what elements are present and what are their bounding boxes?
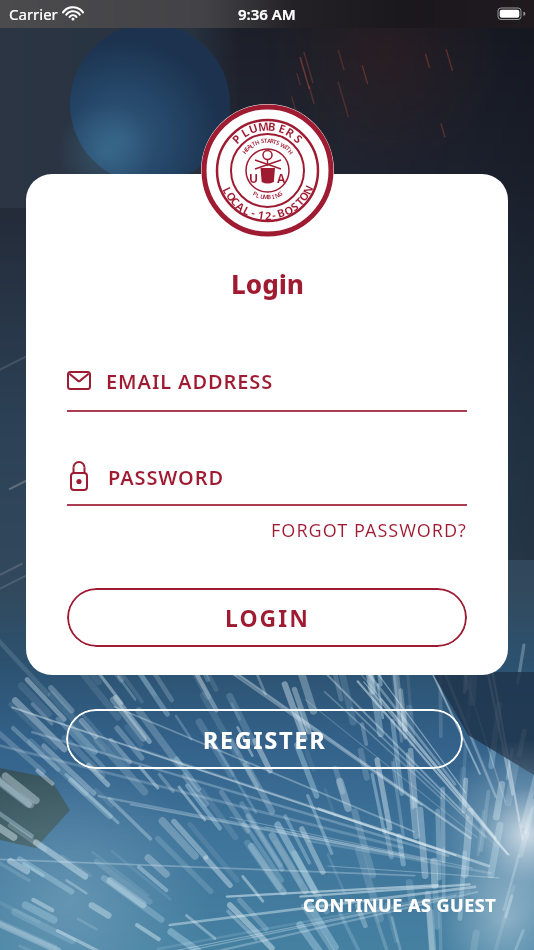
staticText: O — [281, 201, 296, 219]
staticText: N — [274, 191, 281, 200]
staticText: L — [219, 184, 236, 197]
staticText: O — [295, 188, 312, 204]
staticText: T — [284, 145, 292, 153]
staticText: W — [278, 141, 288, 151]
staticText: M — [257, 118, 270, 135]
button[interactable]: FORGOT PASSWORD? — [271, 518, 467, 543]
staticText: 2 — [265, 208, 272, 223]
staticText: B — [267, 193, 271, 201]
staticText: I — [271, 193, 276, 201]
staticText: L — [255, 192, 261, 200]
staticText: U — [259, 193, 266, 202]
staticText: I — [283, 143, 290, 151]
staticText: A — [233, 198, 248, 215]
staticText: P — [229, 130, 245, 148]
staticText: LOGIN — [225, 602, 310, 633]
staticText: T — [250, 139, 257, 148]
staticText: T — [292, 193, 307, 209]
staticText: B — [267, 119, 277, 135]
staticText: S — [275, 139, 281, 147]
staticText: H — [241, 147, 250, 156]
staticText: H — [254, 138, 261, 147]
staticText: PASSWORD — [108, 464, 225, 491]
staticText: L — [241, 202, 254, 219]
staticText — [278, 140, 284, 148]
button[interactable]: PASSWORD — [50, 450, 467, 506]
staticText: Carrier — [9, 4, 58, 24]
staticText: H — [286, 148, 295, 157]
staticText: C — [227, 193, 244, 209]
staticText: P — [251, 189, 259, 198]
staticText: O — [223, 189, 241, 205]
staticText: - — [271, 207, 277, 222]
staticText: L — [248, 142, 256, 150]
staticText: R — [269, 137, 275, 145]
staticText: A — [267, 137, 272, 145]
staticText: REGISTER — [203, 724, 327, 755]
staticText: N — [299, 182, 316, 197]
staticText: 1 — [257, 207, 266, 222]
staticText: L — [238, 124, 253, 141]
staticText: T — [264, 137, 268, 145]
button[interactable]: REGISTER — [66, 709, 463, 769]
staticText: A — [245, 142, 254, 151]
staticText: 9:36 AM — [238, 4, 296, 24]
button[interactable]: LOGIN — [67, 588, 467, 647]
staticText: R — [282, 124, 298, 142]
staticText — [258, 138, 262, 146]
staticText: - — [250, 205, 258, 220]
staticText: A — [277, 170, 286, 186]
staticText: E — [243, 145, 251, 153]
staticText: U — [247, 120, 260, 138]
staticText: G — [276, 189, 285, 198]
button[interactable]: CONTINUE AS GUEST — [303, 893, 497, 918]
staticText: CONTINUE AS GUEST — [303, 893, 497, 918]
staticText: Login — [231, 266, 304, 301]
staticText: S — [287, 198, 302, 214]
staticText: E — [277, 120, 288, 138]
staticText: S — [290, 131, 306, 148]
staticText: U — [249, 170, 259, 186]
staticText: FORGOT PASSWORD? — [271, 518, 467, 543]
staticText: T — [272, 138, 278, 146]
staticText: EMAIL ADDRESS — [106, 368, 274, 395]
staticText: S — [260, 137, 266, 145]
button[interactable]: EMAIL ADDRESS — [50, 355, 467, 412]
staticText: M — [263, 193, 269, 201]
staticText: B — [275, 204, 287, 221]
